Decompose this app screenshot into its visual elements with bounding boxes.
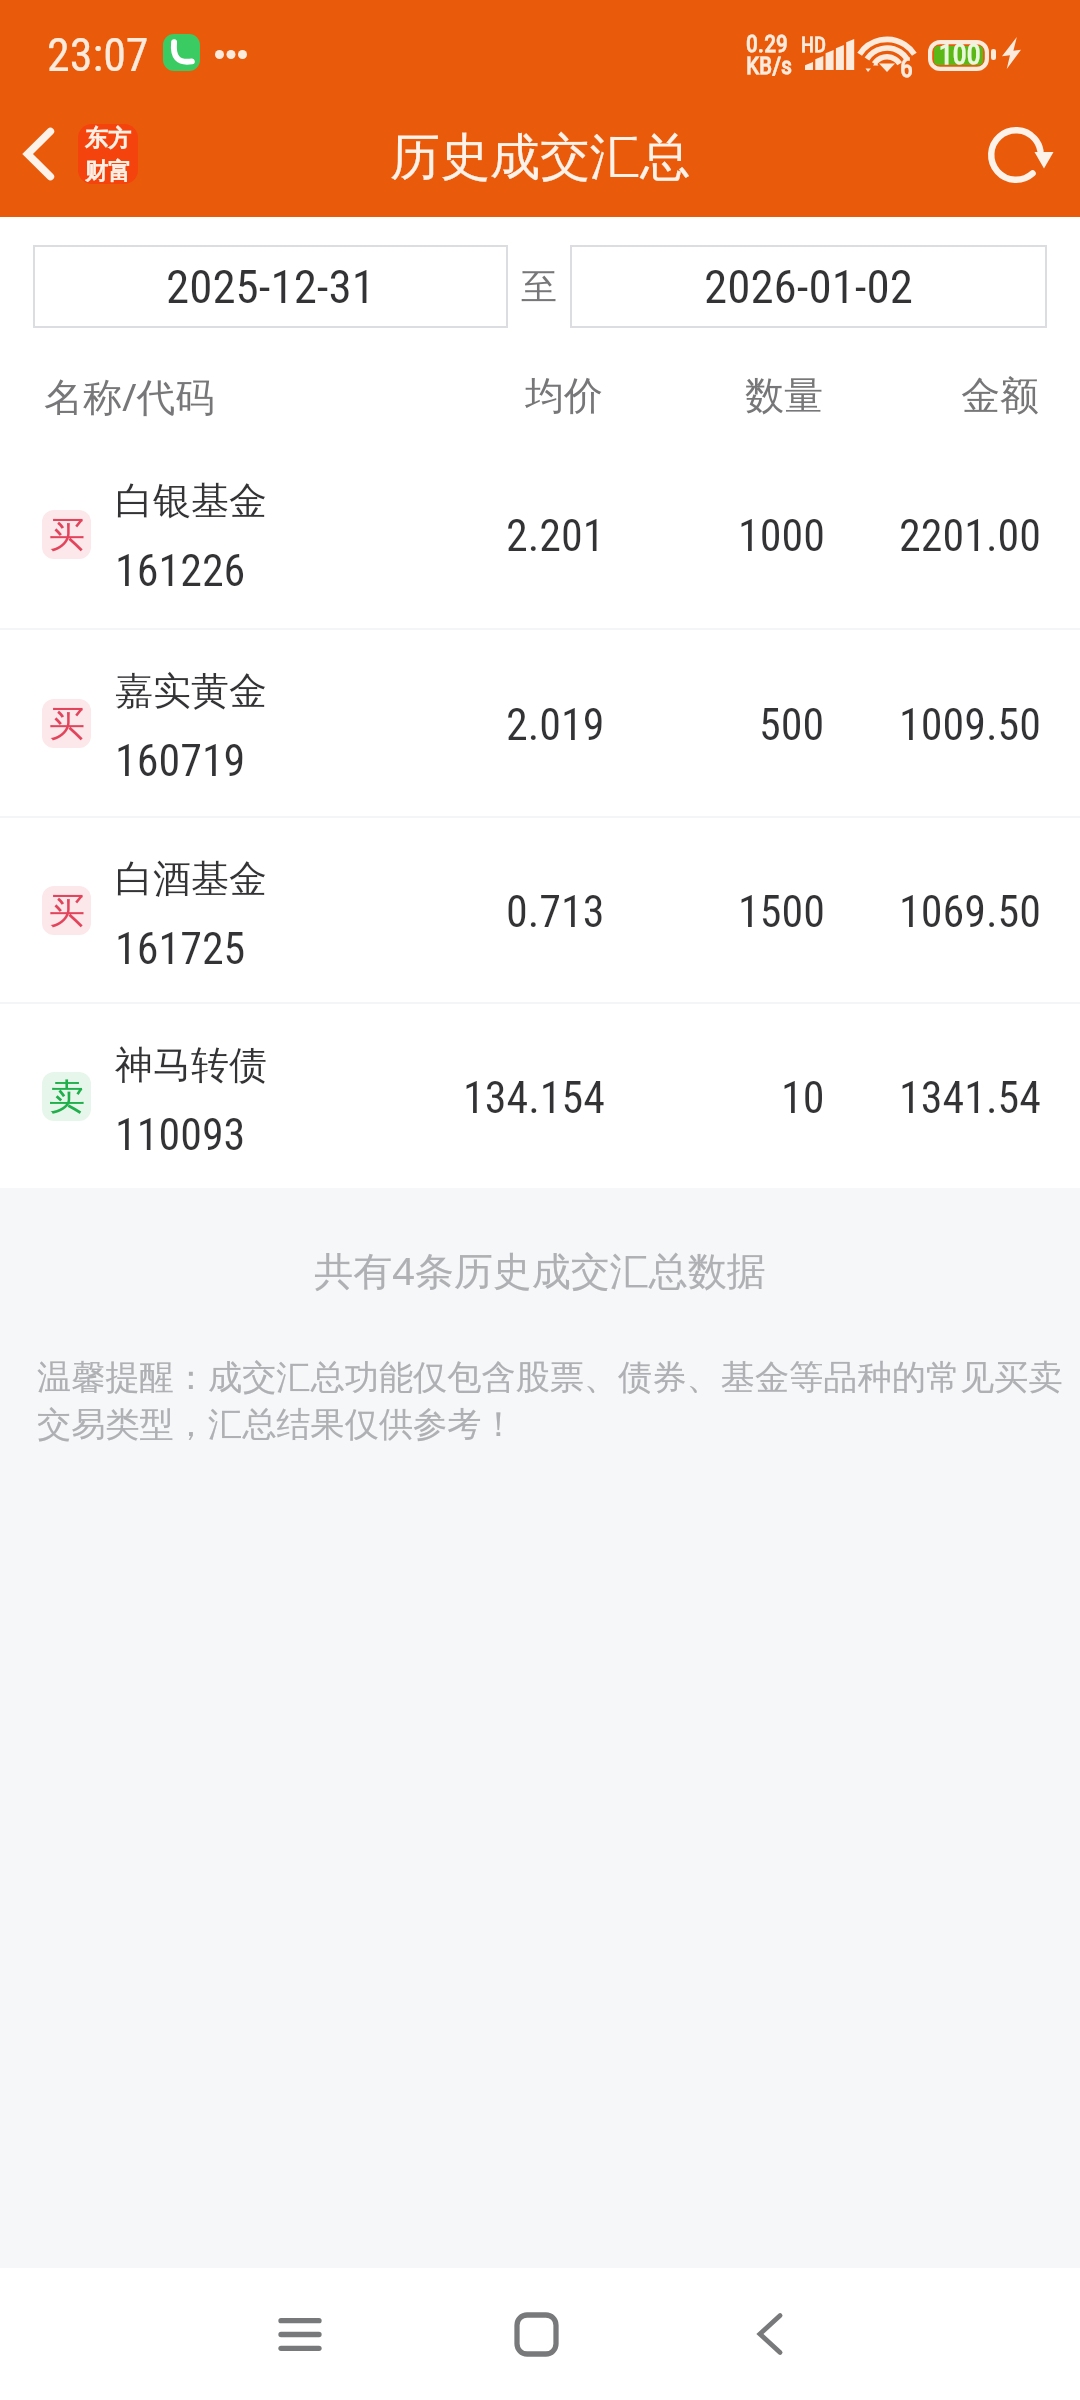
staticText: 财富	[85, 157, 131, 184]
button[interactable]: 买	[0, 818, 1080, 1002]
button[interactable]: Refresh	[965, 99, 1077, 210]
staticText: 白银基金	[115, 477, 267, 525]
staticText: 共有4条历史成交汇总数据	[0, 1243, 1080, 1296]
staticText: 1341.54	[899, 1072, 1041, 1124]
button[interactable]: 卖	[0, 1004, 1080, 1188]
button[interactable]: Home	[464, 2268, 608, 2400]
staticText: 历史成交汇总	[390, 126, 690, 189]
button[interactable]: 买	[0, 630, 1080, 816]
button[interactable]: 2026-01-02	[570, 245, 1047, 328]
staticText: 134.154	[463, 1072, 605, 1124]
staticText: 1009.50	[899, 699, 1041, 751]
staticText: 卖	[49, 1074, 85, 1119]
staticText: 2026-01-02	[704, 259, 913, 314]
staticText: 2.019	[506, 699, 605, 751]
staticText: 1069.50	[899, 886, 1041, 938]
button[interactable]: 2025-12-31	[33, 245, 508, 328]
staticText: 数量	[745, 371, 823, 420]
staticText: 2025-12-31	[166, 259, 375, 314]
staticText: 买	[49, 512, 85, 557]
staticText: 均价	[525, 371, 603, 420]
staticText: 6	[900, 53, 913, 83]
staticText: 0.29	[746, 30, 788, 58]
staticText: 至	[521, 264, 557, 309]
staticText: 温馨提醒：成交汇总功能仅包含股票、债券、基金等品种的常见买卖交易类型，汇总结果仅…	[37, 1356, 1076, 1446]
button[interactable]: Back	[698, 2268, 842, 2400]
staticText: 160719	[115, 735, 246, 787]
staticText: 东方	[85, 124, 131, 153]
staticText: 白酒基金	[115, 855, 267, 903]
staticText: 100	[939, 38, 981, 71]
staticText: 买	[49, 888, 85, 933]
staticText: 名称/代码	[44, 369, 215, 422]
staticText: KB/s	[746, 52, 793, 80]
staticText: 2201.00	[899, 510, 1041, 562]
staticText: HD	[801, 33, 827, 58]
staticText: 23:07	[47, 28, 149, 82]
button[interactable]: Back	[0, 98, 78, 209]
button[interactable]: 买	[0, 440, 1080, 628]
staticText: 161725	[115, 923, 246, 975]
staticText: 0.713	[506, 886, 605, 938]
button[interactable]: Recent apps	[228, 2268, 372, 2400]
staticText: 10	[781, 1072, 825, 1124]
staticText: 买	[49, 701, 85, 746]
staticText: 神马转债	[115, 1041, 267, 1089]
staticText: 500	[759, 699, 825, 751]
staticText: 嘉实黄金	[115, 667, 267, 715]
button[interactable]: East Money logo	[78, 124, 138, 184]
staticText: 110093	[115, 1109, 246, 1161]
staticText: 金额	[961, 371, 1039, 420]
staticText: 161226	[115, 545, 246, 597]
staticText: 2.201	[506, 510, 605, 562]
staticText: 1500	[738, 886, 825, 938]
staticText: 1000	[738, 510, 825, 562]
